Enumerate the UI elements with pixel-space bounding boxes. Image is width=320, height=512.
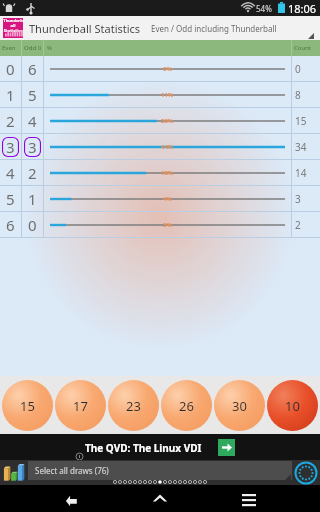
- button[interactable]: 2: [0, 108, 320, 134]
- staticText: 5: [6, 189, 15, 209]
- staticText: Thunderball Statistics: [29, 21, 141, 36]
- staticText: 6: [28, 59, 37, 79]
- button[interactable]: 17: [55, 380, 106, 431]
- staticText: 11%: [161, 91, 174, 99]
- staticText: 4: [28, 111, 37, 131]
- staticText: %: [47, 44, 52, 52]
- button[interactable]: 1: [0, 82, 320, 108]
- staticText: 23: [126, 397, 141, 415]
- staticText: 17: [73, 397, 88, 415]
- staticText: 1: [28, 189, 37, 209]
- button[interactable]: 0: [0, 56, 320, 82]
- staticText: 10: [285, 397, 300, 415]
- button[interactable]: Select all draws (76): [28, 461, 292, 480]
- staticText: Thunderball Statistics: [3, 18, 23, 33]
- staticText: 8: [295, 88, 301, 102]
- button[interactable]: 5: [0, 186, 320, 212]
- button[interactable]: 23: [108, 380, 159, 431]
- staticText: Select all draws (76): [35, 465, 109, 476]
- staticText: 3%: [163, 221, 172, 229]
- staticText: 2: [295, 218, 301, 232]
- staticText: 34: [295, 140, 307, 154]
- staticText: 3: [28, 137, 37, 157]
- button[interactable]: Home: [143, 485, 177, 512]
- staticText: 2: [6, 111, 15, 131]
- staticText: 20%: [161, 117, 174, 125]
- button[interactable]: 15: [2, 380, 53, 431]
- staticText: 3: [6, 137, 15, 157]
- staticText: 4: [6, 163, 15, 183]
- staticText: 0: [28, 215, 37, 235]
- button[interactable]: The QVD: The Linux VDI: [0, 434, 320, 460]
- button[interactable]: Back: [55, 485, 89, 512]
- staticText: 26: [179, 397, 194, 415]
- staticText: 1: [6, 85, 15, 105]
- staticText: Odd 0: [24, 44, 42, 52]
- staticText: 15: [295, 114, 307, 128]
- staticText: 0: [6, 59, 15, 79]
- staticText: Count: [294, 44, 312, 52]
- button[interactable]: Recent apps: [232, 485, 266, 512]
- button[interactable]: 3: [0, 134, 320, 160]
- other: Open ad: [218, 439, 235, 456]
- staticText: 0%: [163, 65, 172, 73]
- button[interactable]: 4: [0, 160, 320, 186]
- staticText: 14: [295, 166, 307, 180]
- staticText: 2: [28, 163, 37, 183]
- staticText: 0: [295, 62, 301, 76]
- button[interactable]: 26: [161, 380, 212, 431]
- staticText: 5: [28, 85, 37, 105]
- staticText: The QVD: The Linux VDI: [85, 441, 202, 455]
- button[interactable]: 6: [0, 212, 320, 238]
- button[interactable]: Refresh: [294, 461, 318, 485]
- staticText: 44%: [161, 143, 174, 151]
- staticText: 3: [295, 192, 301, 206]
- staticText: 15: [20, 397, 35, 415]
- staticText: 18%: [161, 169, 174, 177]
- staticText: 18:06: [288, 1, 317, 16]
- button[interactable]: Even / Odd including Thunderball: [151, 16, 320, 40]
- staticText: 6: [6, 215, 15, 235]
- staticText: Even: [2, 44, 16, 52]
- button[interactable]: 10: [267, 380, 318, 431]
- button[interactable]: 30: [214, 380, 265, 431]
- staticText: 54%: [256, 3, 272, 14]
- staticText: 4%: [163, 195, 172, 203]
- staticText: Even / Odd including Thunderball: [151, 23, 277, 34]
- staticText: 30: [232, 397, 247, 415]
- button[interactable]: App icon: [3, 18, 23, 38]
